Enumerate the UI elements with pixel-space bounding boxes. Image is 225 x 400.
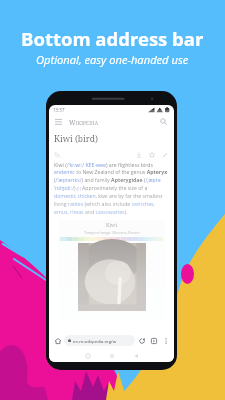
button[interactable]: Menu xyxy=(53,116,64,127)
staticText: Kiwi (bird) xyxy=(54,133,98,145)
staticText: 13:37 xyxy=(53,107,65,113)
button[interactable]: Language xyxy=(53,151,61,159)
button[interactable]: More options xyxy=(160,335,171,346)
staticText: Bottom address bar xyxy=(21,26,204,51)
button[interactable]: Reload xyxy=(136,335,147,346)
button[interactable]: Home xyxy=(105,349,118,362)
button[interactable]: Watch xyxy=(147,150,156,159)
staticText: WIKIPEDIA xyxy=(69,118,99,126)
button[interactable]: Edit xyxy=(160,150,169,159)
button[interactable]: en.m.wikipedia.org/w xyxy=(64,335,135,346)
button[interactable]: Recents xyxy=(81,349,94,362)
button[interactable]: Back xyxy=(129,349,142,362)
button[interactable]: Home xyxy=(52,335,63,346)
staticText: Optional, easy one-handed use xyxy=(36,52,189,67)
staticText: Kiwi (/ˈkiːwiː/ KEE-wee) are flightless … xyxy=(54,161,168,216)
button[interactable]: Tabs xyxy=(148,335,159,346)
staticText: Temporal range: Miocene–Recent xyxy=(84,230,140,235)
button[interactable]: Search xyxy=(158,116,169,127)
staticText: en.m.wikipedia.org/w xyxy=(73,338,116,344)
button[interactable]: Download xyxy=(134,150,143,159)
staticText: Kiwi xyxy=(106,222,118,229)
